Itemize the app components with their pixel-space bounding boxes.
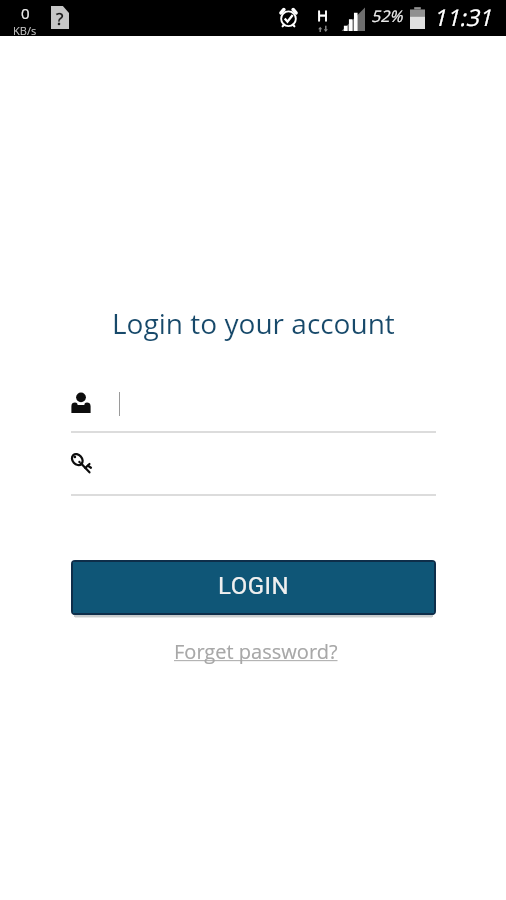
button[interactable]: Password field [71, 448, 436, 496]
other: Signal strength [341, 7, 365, 31]
staticText: Forget password? [174, 638, 338, 665]
other: Password [71, 453, 92, 475]
other: Battery 52 percent [410, 6, 425, 29]
other: No SIM card [51, 6, 69, 29]
staticText: 0 [21, 3, 30, 23]
other: Alarm set [278, 7, 299, 28]
staticText: LOGIN [218, 572, 290, 600]
staticText: Login to your account [112, 304, 395, 342]
staticText: H [317, 5, 329, 25]
staticText: ? [56, 7, 64, 30]
staticText: 52% [371, 5, 403, 27]
other: Username [71, 392, 91, 413]
staticText: 11:31 [433, 1, 492, 32]
staticText: KB/s [13, 23, 37, 38]
button[interactable]: Forget password? [166, 634, 346, 669]
button[interactable]: LOGIN [73, 562, 434, 613]
button[interactable]: Username field [71, 385, 436, 433]
